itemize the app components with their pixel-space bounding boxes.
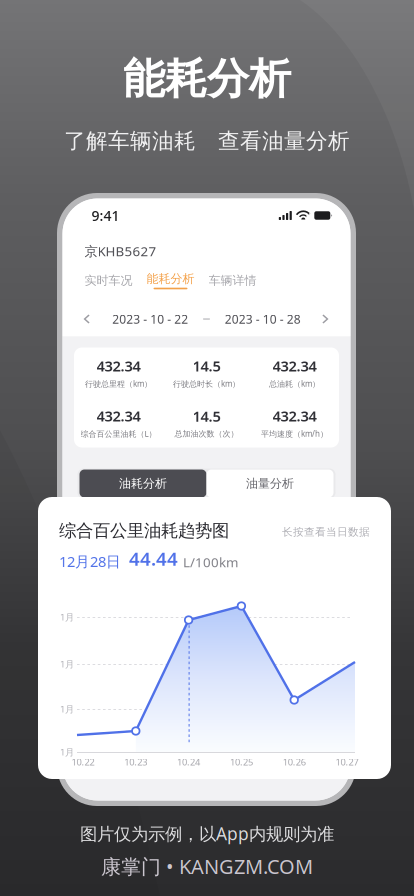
- staticText: 14.5: [192, 406, 220, 426]
- staticText: 432.34: [272, 406, 316, 425]
- staticText: 2023 - 10 - 22: [112, 311, 188, 327]
- staticText: 2023 - 10 - 28: [225, 311, 301, 327]
- button[interactable]: 油耗分析: [79, 469, 206, 497]
- staticText: 10.27: [335, 756, 358, 768]
- staticText: 1月: [60, 658, 74, 670]
- staticText: 油耗分析: [119, 476, 167, 491]
- staticText: 图片仅为示例，以App内规则为准: [80, 822, 334, 845]
- staticText: 实时车况: [84, 273, 132, 288]
- staticText: 432.34: [96, 406, 140, 425]
- staticText: 康掌门 • KANGZM.COM: [101, 853, 313, 880]
- staticText: 432.34: [96, 356, 140, 375]
- staticText: 车辆详情: [208, 273, 256, 288]
- staticText: 10.22: [71, 756, 94, 768]
- button[interactable]: 车辆详情: [206, 269, 258, 291]
- staticText: 了解车辆油耗 查看油量分析: [64, 127, 350, 155]
- staticText: 10.23: [124, 756, 147, 768]
- staticText: 1月: [60, 611, 74, 623]
- button[interactable]: 油量分析: [206, 469, 333, 497]
- staticText: 1月: [60, 746, 74, 758]
- staticText: 行驶总时长（km）: [173, 378, 240, 389]
- staticText: 千公里次数: [265, 529, 320, 543]
- staticText: 行驶总里程（km）: [85, 378, 152, 389]
- staticText: 10.25: [230, 756, 253, 768]
- staticText: L/100km: [183, 553, 238, 571]
- staticText: 总加油次数（次）: [174, 429, 238, 439]
- staticText: 平均速度（km/h）: [261, 428, 328, 439]
- button[interactable]: 下一周: [315, 308, 337, 330]
- staticText: 9:41: [91, 206, 119, 225]
- staticText: 14.5: [192, 356, 220, 375]
- staticText: 10.26: [283, 756, 306, 768]
- staticText: 京KHB5627: [84, 242, 156, 260]
- button[interactable]: 上一周: [75, 308, 97, 330]
- staticText: 驾驶行为: [98, 529, 142, 543]
- staticText: 累计次数: [184, 529, 228, 543]
- staticText: 综合百公里油耗趋势图: [59, 520, 229, 541]
- staticText: 12月28日: [59, 551, 121, 571]
- button[interactable]: 能耗分析: [144, 269, 196, 291]
- staticText: 综合百公里油耗（L）: [80, 428, 156, 439]
- staticText: 10.24: [177, 756, 200, 768]
- staticText: 能耗分析: [146, 271, 194, 286]
- staticText: 44.44: [129, 546, 178, 571]
- staticText: 油量分析: [246, 476, 294, 491]
- staticText: 总油耗（km）: [269, 378, 320, 389]
- staticText: 长按查看当日数据: [282, 525, 370, 538]
- staticText: 1月: [60, 703, 74, 715]
- staticText: 能耗分析: [123, 52, 291, 105]
- button[interactable]: 实时车况: [82, 269, 134, 291]
- staticText: 432.34: [272, 356, 316, 375]
